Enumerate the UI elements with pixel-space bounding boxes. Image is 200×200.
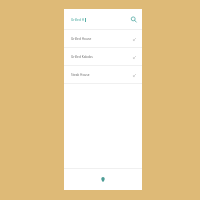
other: Insert suggestion <box>129 34 139 44</box>
staticText: Steak House <box>71 73 90 77</box>
other: Search <box>127 13 139 25</box>
other: Insert suggestion <box>129 52 139 62</box>
button[interactable]: Grilled House <box>64 30 142 47</box>
button[interactable]: Grilled H <box>64 9 142 29</box>
staticText: Grilled H <box>71 18 85 22</box>
button[interactable]: Steak House <box>64 66 142 83</box>
staticText: Grilled Kabobs <box>71 55 93 59</box>
staticText: Grilled House <box>71 37 92 41</box>
button[interactable]: Explore <box>90 169 116 190</box>
other: Insert suggestion <box>129 70 139 80</box>
button[interactable]: Grilled Kabobs <box>64 48 142 65</box>
